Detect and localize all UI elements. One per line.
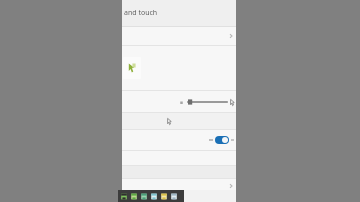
other: Open	[229, 183, 233, 189]
button[interactable]: App	[120, 192, 128, 201]
button[interactable]: Slider	[122, 91, 236, 112]
button[interactable]: Toggle on	[215, 136, 229, 144]
other: Open	[229, 33, 233, 39]
button[interactable]: Toggle on	[122, 130, 236, 150]
button[interactable]: App	[170, 192, 178, 201]
other: Pointer icon	[123, 57, 141, 79]
button[interactable]: App	[150, 192, 158, 201]
staticText: and touch	[124, 8, 158, 18]
button[interactable]	[122, 194, 236, 202]
button[interactable]: App	[160, 192, 168, 201]
button[interactable]: Pointer icon	[122, 46, 236, 90]
button[interactable]: App	[130, 192, 138, 201]
button[interactable]: Cursor	[122, 113, 236, 129]
button[interactable]: Open	[122, 179, 236, 193]
other: Slider	[186, 98, 229, 106]
button[interactable]: App	[140, 192, 148, 201]
other: Cursor	[167, 118, 172, 125]
other: Cursor	[230, 99, 235, 106]
